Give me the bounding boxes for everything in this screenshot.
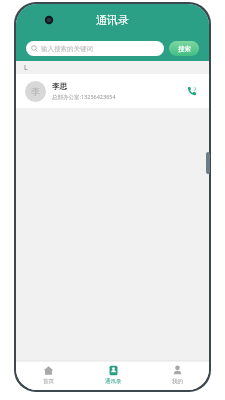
staticText: 李 (31, 86, 40, 97)
button[interactable]: 输入搜索的关键词 (26, 41, 164, 56)
staticText: 输入搜索的关键词 (41, 45, 93, 53)
button[interactable]: 通讯录 (81, 361, 145, 390)
staticText: 李思 (52, 82, 67, 91)
staticText: 通讯录 (105, 378, 122, 385)
staticText: 总部办公室:13256423654 (52, 93, 116, 101)
staticText: L (24, 63, 28, 73)
button[interactable]: 搜索 (169, 41, 199, 56)
button[interactable]: 李 (16, 74, 209, 108)
staticText: 搜索 (178, 45, 191, 53)
staticText: 首页 (43, 378, 54, 385)
button[interactable]: Call (184, 83, 200, 99)
staticText: 我的 (172, 378, 183, 385)
button[interactable]: 首页 (16, 361, 81, 390)
staticText: 通讯录 (96, 13, 129, 27)
button[interactable]: 我的 (145, 361, 209, 390)
